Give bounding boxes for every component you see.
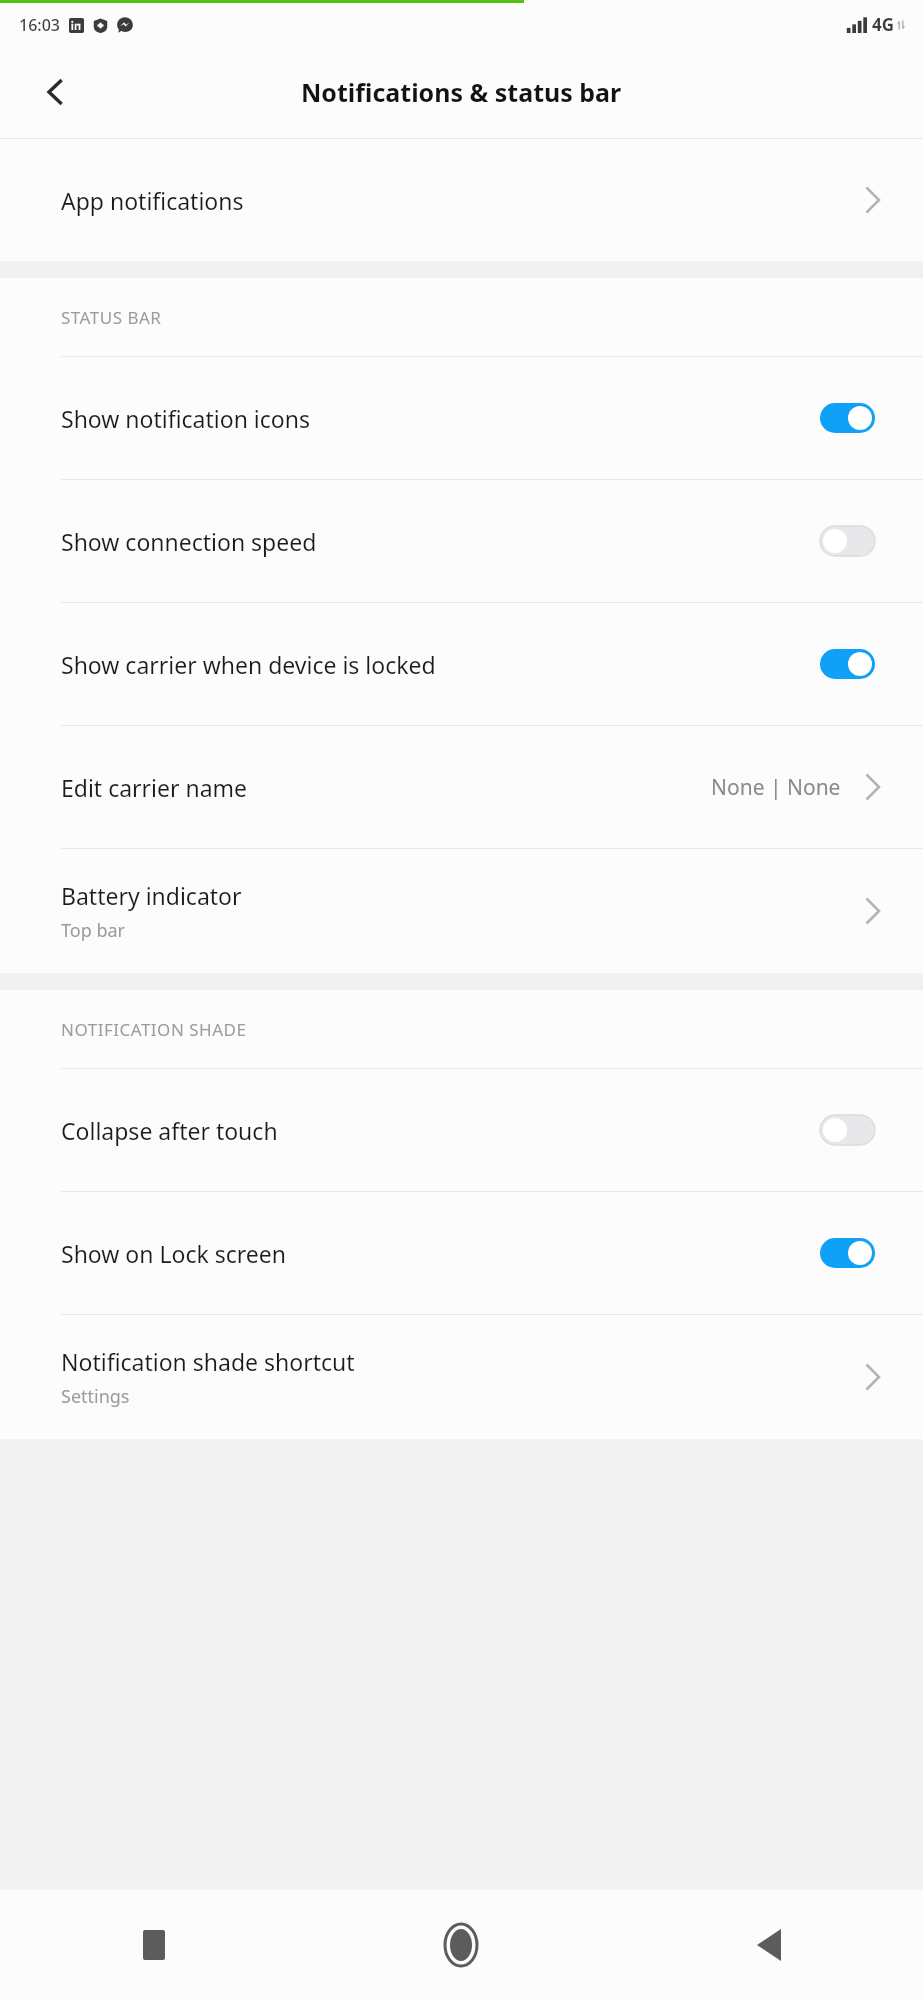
staticText: None | None <box>711 773 841 802</box>
button[interactable]: Show connection speed <box>0 480 923 602</box>
button[interactable]: Collapse after touch <box>0 1069 923 1191</box>
staticText: 4G <box>872 13 895 36</box>
staticText: Top bar <box>61 918 125 943</box>
staticText: App notifications <box>61 185 244 216</box>
staticText: Show notification icons <box>61 403 310 434</box>
staticText: Notifications & status bar <box>301 75 622 109</box>
staticText: Show carrier when device is locked <box>61 649 436 680</box>
button[interactable]: App notifications <box>0 139 923 261</box>
staticText: Collapse after touch <box>61 1115 278 1146</box>
staticText: Show on Lock screen <box>61 1238 286 1269</box>
button[interactable]: Edit carrier name <box>0 726 923 848</box>
button[interactable]: Show notification icons <box>0 357 923 479</box>
staticText: Settings <box>61 1384 130 1409</box>
staticText: Show connection speed <box>61 526 317 557</box>
button[interactable]: Back <box>615 1890 923 2000</box>
staticText: NOTIFICATION SHADE <box>61 1018 247 1041</box>
staticText: Notification shade shortcut <box>61 1346 355 1377</box>
button[interactable]: Show on Lock screen <box>0 1192 923 1314</box>
button[interactable]: Recents <box>0 1890 307 2000</box>
button[interactable]: Notification shade shortcut <box>0 1315 923 1439</box>
button[interactable]: Back <box>26 63 84 121</box>
button[interactable]: Home <box>307 1890 615 2000</box>
staticText: STATUS BAR <box>61 306 162 329</box>
button[interactable]: Battery indicator <box>0 849 923 973</box>
staticText: 16:03 <box>19 14 60 36</box>
staticText: Edit carrier name <box>61 772 248 803</box>
button[interactable]: Show carrier when device is locked <box>0 603 923 725</box>
staticText: Battery indicator <box>61 880 242 911</box>
